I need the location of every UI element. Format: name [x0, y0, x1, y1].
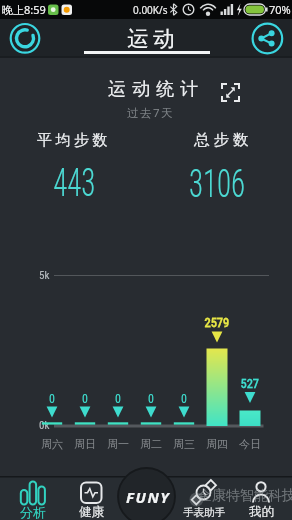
button[interactable] [175, 478, 232, 520]
staticText: 运动 [125, 25, 177, 52]
staticText: FUNY [126, 487, 171, 507]
staticText: 分析 [20, 504, 46, 520]
staticText: 运动统计 [105, 78, 201, 101]
staticText: 总步数 [194, 130, 253, 150]
staticText: 平均步数 [35, 131, 109, 150]
button[interactable] [3, 478, 62, 520]
staticText: 健康 [79, 504, 104, 520]
staticText: 0.00K/s [133, 3, 168, 17]
button[interactable] [232, 478, 290, 520]
button[interactable] [8, 21, 42, 55]
staticText: 金康特智能科技 [198, 487, 292, 505]
button[interactable] [62, 478, 120, 520]
staticText: 我的 [249, 504, 274, 520]
button[interactable] [250, 21, 284, 55]
staticText: 443 [53, 160, 95, 206]
staticText: 70% [269, 2, 291, 17]
staticText: 3106 [189, 161, 245, 207]
button[interactable] [118, 468, 175, 520]
staticText: 过去7天 [127, 105, 175, 121]
staticText: 手表助手 [183, 506, 225, 519]
staticText: 晚上8:59 [2, 2, 46, 17]
button[interactable] [218, 80, 243, 105]
